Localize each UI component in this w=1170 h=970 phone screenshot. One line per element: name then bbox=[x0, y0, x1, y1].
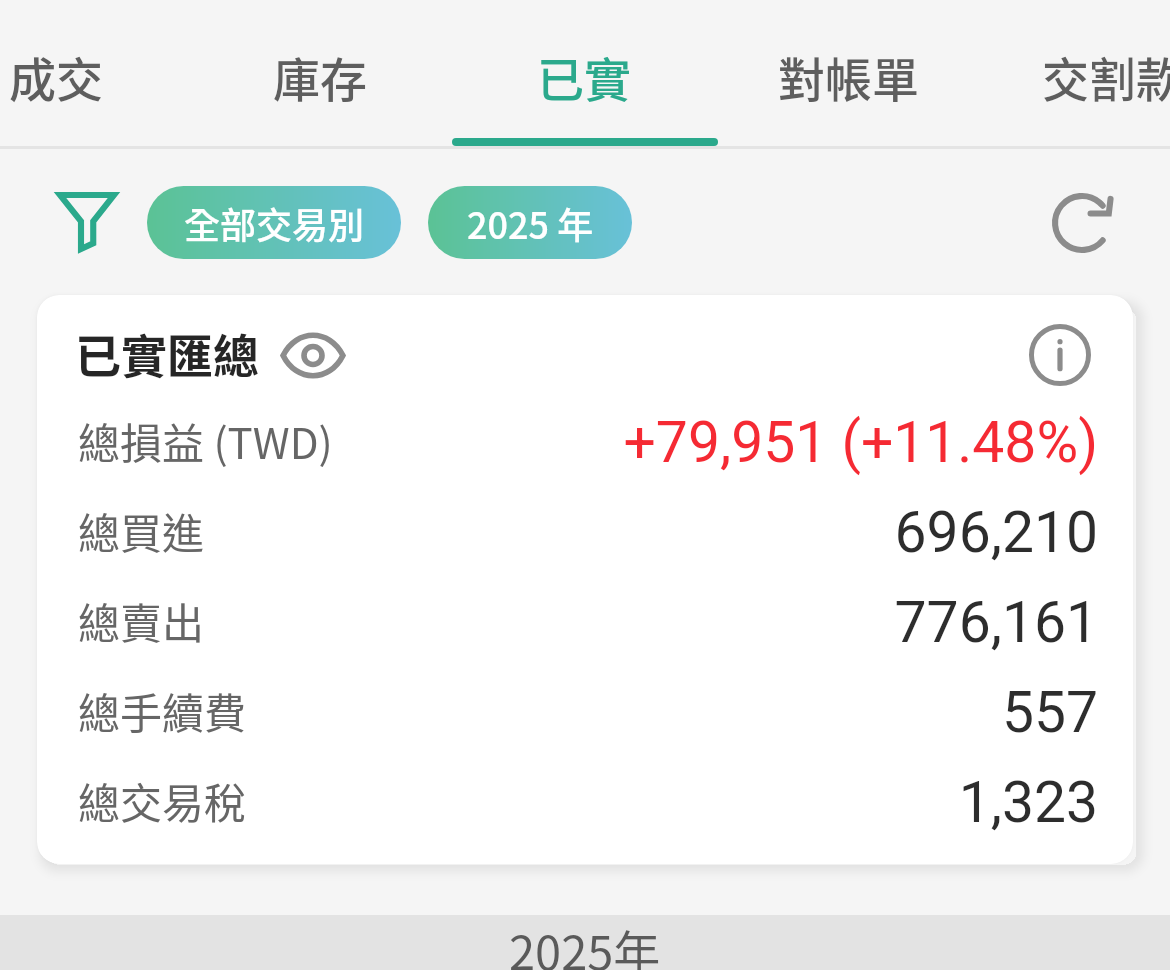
staticText: 696,210 bbox=[894, 499, 1098, 566]
button[interactable]: Filter bbox=[47, 182, 127, 262]
staticText: 庫存 bbox=[273, 42, 367, 110]
button[interactable]: Info bbox=[1022, 317, 1098, 393]
staticText: 成交 bbox=[9, 42, 103, 110]
button[interactable]: 交割款 bbox=[981, 6, 1170, 145]
staticText: 總手續費 bbox=[78, 680, 247, 741]
staticText: 全部交易別 bbox=[184, 197, 365, 249]
staticText: 已實 bbox=[537, 42, 631, 110]
staticText: 2025 年 bbox=[467, 197, 594, 249]
button[interactable]: 2025年 bbox=[0, 915, 1170, 970]
staticText: 776,161 bbox=[894, 589, 1098, 656]
button[interactable]: Toggle amount visibility bbox=[273, 319, 353, 391]
button[interactable]: Refresh bbox=[1038, 178, 1128, 268]
staticText: 1,323 bbox=[958, 769, 1098, 836]
staticText: 總交易稅 bbox=[78, 770, 247, 831]
button[interactable]: 庫存 bbox=[189, 6, 451, 145]
staticText: 總買進 bbox=[78, 500, 205, 561]
staticText: 已實匯總 bbox=[75, 320, 259, 387]
staticText: 2025年 bbox=[509, 915, 661, 970]
staticText: +79,951 (+11.48%) bbox=[623, 409, 1098, 476]
button[interactable]: 已實 bbox=[453, 6, 715, 145]
staticText: 總賣出 bbox=[78, 590, 205, 651]
button[interactable]: 全部交易別 bbox=[147, 186, 401, 259]
staticText: 總損益 (TWD) bbox=[78, 410, 333, 471]
button[interactable]: 對帳單 bbox=[717, 6, 979, 145]
button[interactable]: 2025 年 bbox=[428, 186, 632, 259]
staticText: 對帳單 bbox=[778, 42, 919, 110]
staticText: 557 bbox=[1001, 679, 1098, 746]
staticText: 交割款 bbox=[1042, 42, 1170, 110]
button[interactable]: 成交 bbox=[0, 6, 187, 145]
